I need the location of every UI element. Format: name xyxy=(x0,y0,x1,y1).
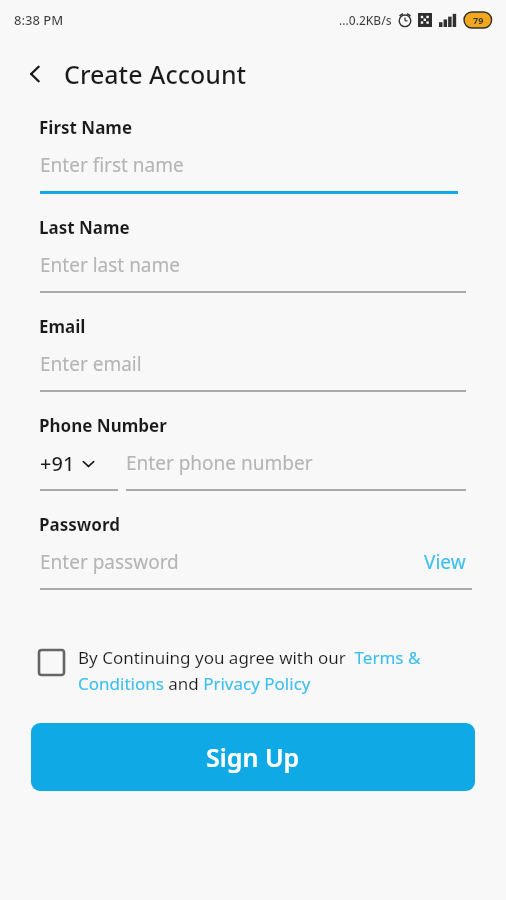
button[interactable]: Agree to terms checkbox xyxy=(39,646,476,695)
staticText: Email xyxy=(39,315,86,338)
button[interactable]: Enter first name xyxy=(40,139,458,191)
button[interactable]: Enter email xyxy=(40,338,466,390)
button[interactable]: Enter phone number xyxy=(126,437,466,491)
staticText: Enter first name xyxy=(40,152,184,178)
staticText: Phone Number xyxy=(39,414,167,437)
button[interactable]: View xyxy=(424,549,466,575)
button[interactable]: Back xyxy=(14,52,58,96)
staticText: Enter phone number xyxy=(126,450,313,476)
button[interactable]: Enter last name xyxy=(40,239,466,291)
button[interactable]: Enter password xyxy=(40,549,416,575)
staticText: 79 xyxy=(473,14,484,26)
staticText: First Name xyxy=(39,116,133,139)
staticText: ...0.2KB/s xyxy=(339,12,392,28)
button[interactable]: +91 xyxy=(40,437,118,491)
staticText: Password xyxy=(39,513,120,536)
staticText: +91 xyxy=(40,450,75,477)
staticText: Enter last name xyxy=(40,252,181,278)
staticText: Enter password xyxy=(40,549,179,575)
staticText: By Continuing you agree with our Terms &… xyxy=(78,646,476,695)
staticText: Enter email xyxy=(40,351,142,377)
staticText: View xyxy=(424,549,466,575)
staticText: Create Account xyxy=(64,57,247,91)
other: Agree to terms checkbox xyxy=(39,650,64,675)
staticText: Last Name xyxy=(39,216,130,239)
staticText: Sign Up xyxy=(206,740,300,774)
staticText: 8:38 PM xyxy=(14,11,64,29)
button[interactable]: Sign Up xyxy=(31,723,475,791)
